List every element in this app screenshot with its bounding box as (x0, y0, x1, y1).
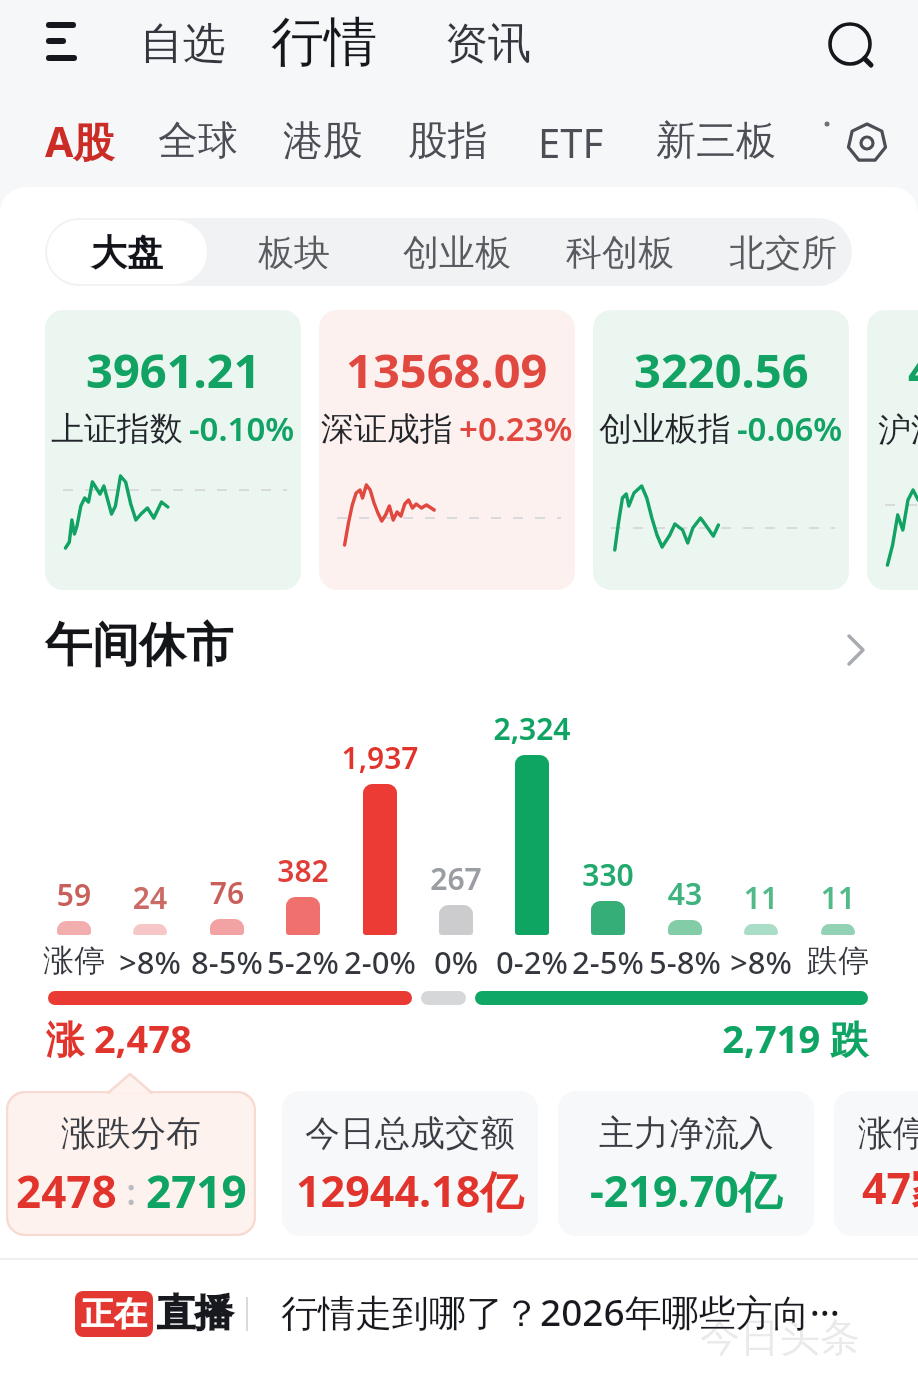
staticText: 24 (80, 877, 220, 918)
staticText: 8-5% (157, 941, 297, 983)
button[interactable] (843, 630, 871, 670)
staticText: 深证成指 (321, 408, 453, 450)
staticText: +0.23% (459, 406, 573, 451)
staticText: 主力净流入 (599, 1111, 774, 1155)
staticText: 大盘 (91, 230, 163, 275)
staticText: : (117, 1167, 146, 1216)
button[interactable]: 自选 (140, 17, 226, 71)
button[interactable] (133, 924, 167, 935)
staticText: 2-5% (538, 941, 678, 983)
staticText: 76 (157, 872, 297, 913)
button[interactable] (668, 920, 702, 935)
button[interactable] (57, 921, 91, 935)
staticText: 13568.09 (346, 338, 548, 402)
staticText: 沪深300 (878, 406, 918, 451)
staticText: 2-0% (310, 941, 450, 983)
button[interactable]: 主力净流入 (558, 1091, 814, 1236)
button[interactable] (210, 919, 244, 935)
staticText: 47家 (862, 1158, 918, 1217)
staticText: 11 (691, 877, 831, 918)
button[interactable]: 正在 (75, 1291, 153, 1337)
button[interactable] (515, 755, 549, 935)
staticText: 北交所 (729, 230, 837, 275)
button[interactable]: 3961.21 (45, 310, 301, 590)
button[interactable] (439, 905, 473, 935)
staticText: 11 (768, 877, 908, 918)
button[interactable]: 创业板 (375, 220, 538, 284)
staticText: 行情走到哪了？2026年哪些方向··· (281, 1286, 840, 1337)
staticText: 今日头条 (700, 1312, 860, 1362)
button[interactable] (363, 784, 397, 935)
staticText: 1,937 (310, 737, 450, 778)
staticText: >8% (80, 941, 220, 983)
staticText: 0% (386, 941, 526, 983)
staticText: 正在 (81, 1293, 147, 1335)
button[interactable]: 大盘 (47, 220, 207, 284)
button[interactable] (826, 20, 874, 68)
button[interactable]: 今日总成交额 (282, 1091, 538, 1236)
staticText: 5-2% (233, 941, 373, 983)
button[interactable]: 北交所 (701, 220, 864, 284)
staticText: 59 (4, 874, 144, 915)
staticText: 2478 (16, 1161, 117, 1221)
staticText: 板块 (258, 230, 330, 275)
staticText: -0.10% (189, 406, 295, 451)
button[interactable]: 午间休市 (45, 616, 233, 675)
button[interactable] (744, 924, 778, 935)
staticText: >8% (691, 941, 831, 983)
staticText: -219.70亿 (590, 1161, 782, 1220)
button[interactable]: 股指 (408, 115, 488, 165)
staticText: 创业板 (403, 230, 511, 275)
button[interactable]: 港股 (283, 115, 363, 165)
staticText: 267 (386, 858, 526, 899)
button[interactable] (44, 20, 84, 64)
button[interactable] (846, 122, 888, 164)
button[interactable]: A股 (45, 113, 115, 169)
staticText: 科创板 (566, 230, 674, 275)
staticText: 涨 2,478 (46, 1012, 192, 1064)
staticText: 4571.99 (908, 338, 918, 402)
button[interactable]: 新三板 (656, 115, 776, 165)
staticText: 涨停家数 (858, 1111, 918, 1155)
staticText: 涨停 (4, 941, 144, 980)
staticText: 3220.56 (634, 338, 809, 402)
staticText: 直播 (157, 1289, 233, 1337)
button[interactable]: 科创板 (538, 220, 701, 284)
staticText: 2,324 (462, 708, 602, 749)
staticText: 5-8% (615, 941, 755, 983)
button[interactable]: ETF (538, 115, 604, 169)
button[interactable] (0, 1270, 918, 1370)
staticText: 跌停 (768, 941, 908, 980)
staticText: 12944.18亿 (296, 1161, 524, 1220)
staticText: 0-2% (462, 941, 602, 983)
button[interactable] (591, 901, 625, 935)
button[interactable] (286, 897, 320, 935)
button[interactable]: 资讯 (445, 17, 531, 71)
button[interactable]: 4571.99 (867, 310, 918, 590)
staticText: 创业板指 (599, 408, 731, 450)
button[interactable] (834, 1091, 918, 1236)
staticText: 43 (615, 873, 755, 914)
button[interactable]: 全球 (158, 115, 238, 165)
staticText: 382 (233, 850, 373, 891)
button[interactable] (821, 924, 855, 935)
button[interactable]: 3220.56 (593, 310, 849, 590)
staticText: 330 (538, 854, 678, 895)
staticText: 涨跌分布 (61, 1111, 201, 1155)
staticText: -0.06% (737, 406, 843, 451)
button[interactable]: 板块 (212, 220, 375, 284)
staticText: 今日总成交额 (305, 1111, 515, 1155)
button[interactable]: 涨跌分布 (6, 1091, 256, 1236)
staticText: 2,719 跌 (568, 1012, 868, 1064)
staticText: 3961.21 (86, 338, 261, 402)
button[interactable]: 13568.09 (319, 310, 575, 590)
staticText: 2719 (146, 1161, 247, 1221)
button[interactable]: 行情 (271, 9, 377, 76)
staticText: 上证指数 (51, 408, 183, 450)
